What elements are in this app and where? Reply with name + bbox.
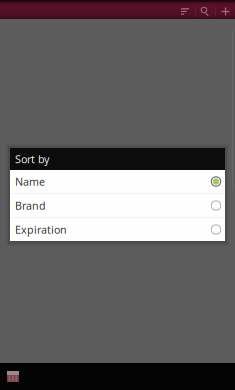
button[interactable]: Expiration — [10, 218, 225, 241]
button[interactable]: Add item — [216, 4, 235, 19]
staticText: Name — [15, 174, 45, 189]
button[interactable]: Name — [10, 170, 225, 193]
button[interactable]: Brand — [10, 194, 225, 217]
staticText: Expiration — [15, 222, 67, 237]
button[interactable]: Recent apps — [4, 367, 22, 385]
staticText: Sort by — [15, 152, 49, 166]
button[interactable]: Sort — [175, 4, 195, 19]
staticText: Brand — [15, 198, 46, 213]
button[interactable]: Search — [196, 4, 215, 19]
